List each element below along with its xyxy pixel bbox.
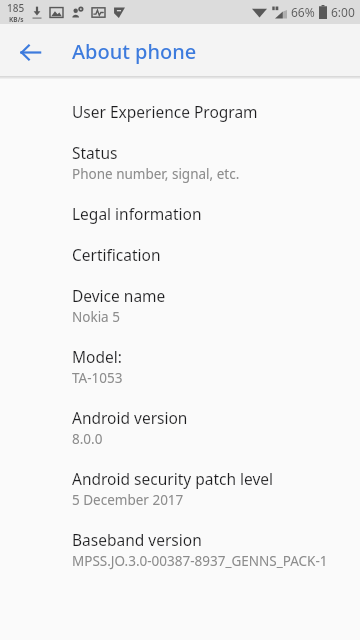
staticText: Baseband version [72, 529, 202, 550]
button[interactable]: Device name [0, 275, 360, 336]
staticText: About phone [72, 38, 197, 65]
button[interactable]: Status [0, 132, 360, 193]
staticText: Status [72, 142, 118, 163]
staticText: Model: [72, 346, 122, 367]
staticText: 185 [7, 1, 25, 15]
staticText: Android version [72, 407, 188, 428]
staticText: Legal information [72, 203, 202, 224]
staticText: 5 December 2017 [72, 491, 184, 509]
button[interactable]: Baseband version [0, 519, 360, 580]
staticText: Nokia 5 [72, 308, 120, 326]
button[interactable]: Model: [0, 336, 360, 397]
staticText: MPSS.JO.3.0-00387-8937_GENNS_PACK-1 [72, 552, 328, 570]
staticText: 66% [291, 4, 315, 20]
staticText: Device name [72, 285, 166, 306]
button[interactable]: Android security patch level [0, 458, 360, 519]
button[interactable]: Legal information [0, 193, 360, 234]
button[interactable]: Certification [0, 234, 360, 275]
staticText: Android security patch level [72, 468, 274, 489]
button[interactable]: Back [10, 32, 50, 72]
staticText: 6:00 [331, 4, 355, 20]
staticText: KB/s [9, 15, 24, 24]
staticText: User Experience Program [72, 101, 258, 122]
button[interactable]: User Experience Program [0, 91, 360, 132]
button[interactable]: Android version [0, 397, 360, 458]
staticText: 8.0.0 [72, 430, 103, 448]
staticText: Phone number, signal, etc. [72, 165, 240, 183]
staticText: Certification [72, 244, 161, 265]
staticText: TA-1053 [72, 369, 123, 387]
